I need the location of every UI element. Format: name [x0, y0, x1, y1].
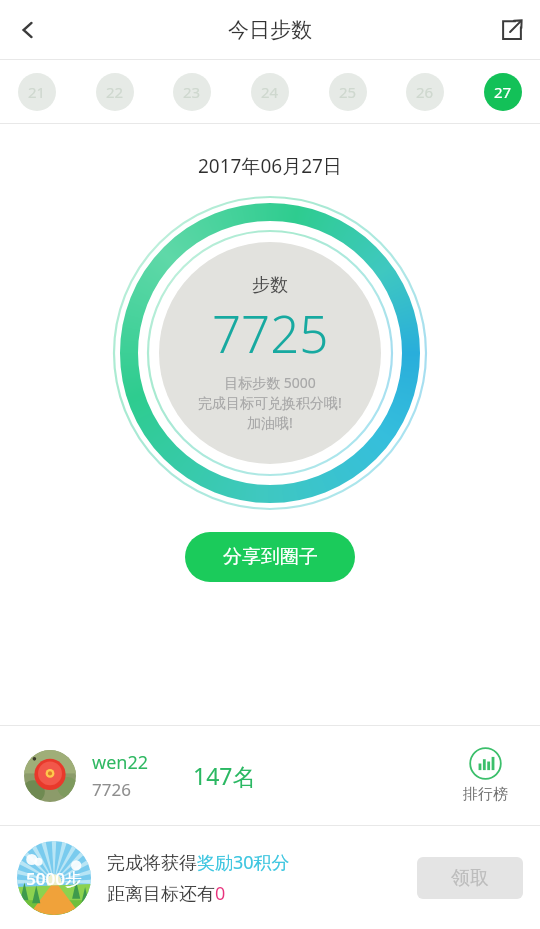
staticText: 22: [106, 82, 124, 102]
staticText: 5000步: [26, 867, 82, 890]
button[interactable]: 21: [18, 73, 56, 111]
staticText: 147名: [193, 760, 256, 791]
staticText: wen22: [92, 750, 149, 775]
staticText: 2017年06月27日: [198, 153, 342, 179]
staticText: 今日步数: [228, 17, 312, 43]
button[interactable]: 25: [329, 73, 367, 111]
button[interactable]: Back: [0, 0, 56, 59]
staticText: 7726: [92, 778, 131, 801]
staticText: 目标步数 5000 完成目标可兑换积分哦! 加油哦!: [198, 373, 342, 432]
staticText: 距离目标还有0: [107, 881, 226, 906]
staticText: 24: [261, 82, 279, 102]
button[interactable]: 22: [96, 73, 134, 111]
staticText: 27: [494, 82, 512, 102]
staticText: 步数: [252, 274, 288, 297]
staticText: 完成将获得奖励30积分: [107, 850, 290, 875]
button[interactable]: 分享到圈子: [185, 532, 355, 582]
button[interactable]: 领取: [417, 857, 523, 899]
staticText: 23: [183, 82, 201, 102]
button[interactable]: 24: [251, 73, 289, 111]
staticText: 领取: [451, 866, 489, 890]
staticText: 排行榜: [463, 785, 508, 804]
button[interactable]: Share: [484, 0, 540, 59]
staticText: 分享到圈子: [223, 545, 318, 569]
button[interactable]: 排行榜: [442, 726, 528, 825]
staticText: 7725: [212, 298, 329, 367]
button[interactable]: 23: [173, 73, 211, 111]
button[interactable]: wen22: [0, 726, 540, 825]
staticText: 21: [28, 82, 46, 102]
staticText: 25: [339, 82, 357, 102]
button[interactable]: 26: [406, 73, 444, 111]
button[interactable]: 27: [484, 73, 522, 111]
staticText: 26: [416, 82, 434, 102]
